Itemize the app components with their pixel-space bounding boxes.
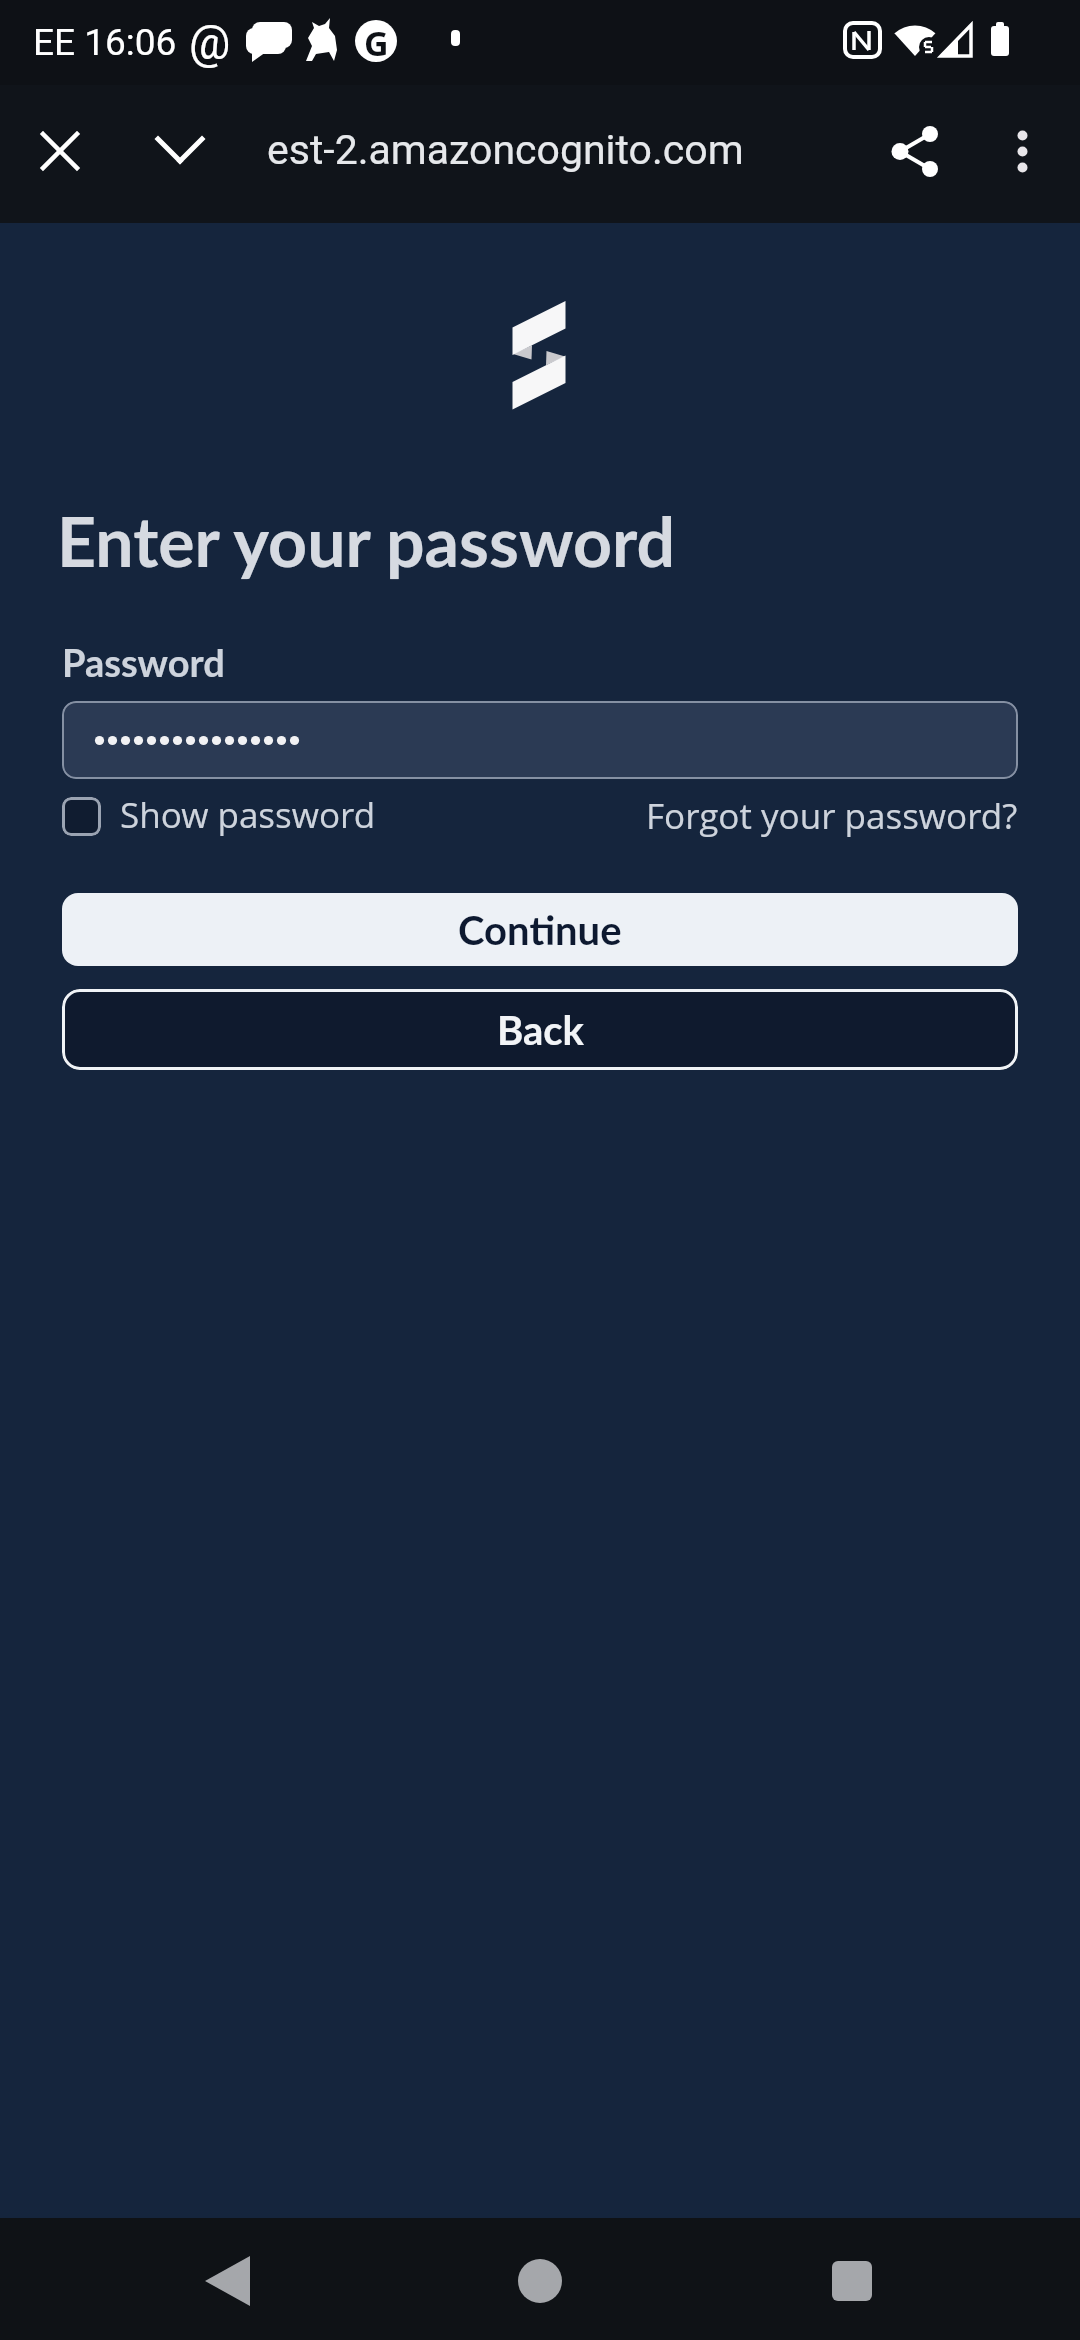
button[interactable]: Continue — [62, 893, 1018, 966]
button[interactable] — [62, 701, 1018, 779]
button[interactable] — [818, 2247, 886, 2315]
staticText: est-2.amazoncognito.com — [267, 126, 744, 174]
button[interactable] — [26, 117, 94, 185]
button[interactable] — [988, 117, 1056, 185]
staticText: Show password — [120, 791, 376, 839]
button[interactable]: Forgot your password? — [548, 788, 1018, 844]
staticText: Continue — [458, 906, 622, 954]
button[interactable]: Back — [62, 989, 1018, 1070]
staticText: EE 16:06 — [33, 21, 177, 64]
button[interactable] — [193, 2247, 261, 2315]
button[interactable] — [506, 2247, 574, 2315]
staticText: Forgot your password? — [646, 792, 1018, 840]
staticText: @ — [189, 16, 231, 70]
staticText: Password — [62, 639, 225, 685]
staticText: G — [364, 20, 389, 62]
button[interactable]: Show password — [120, 791, 376, 839]
button[interactable] — [146, 117, 214, 185]
button[interactable] — [62, 797, 101, 836]
staticText: Back — [497, 1006, 584, 1054]
staticText: Enter your password — [57, 500, 675, 582]
button[interactable] — [881, 117, 949, 185]
